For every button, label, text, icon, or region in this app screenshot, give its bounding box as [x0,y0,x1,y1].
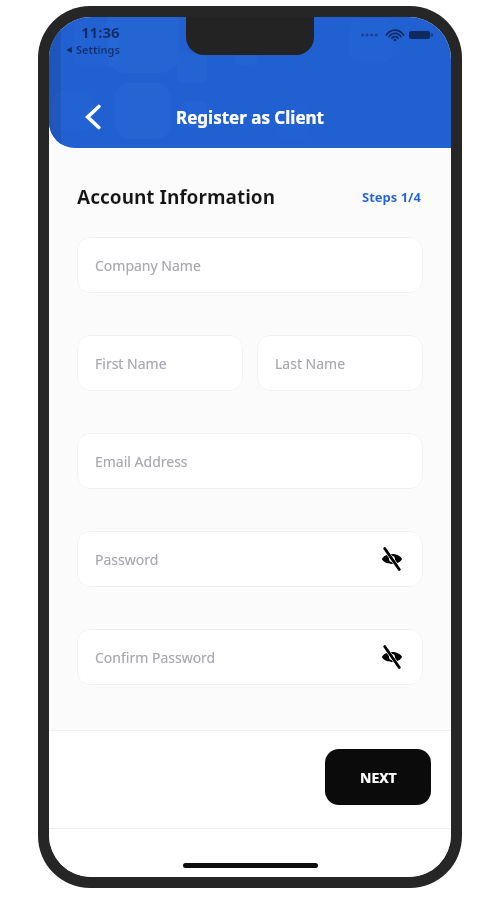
button[interactable]: NEXT [325,749,431,805]
staticText: Company Name [95,256,201,275]
staticText: Settings [76,42,120,57]
staticText: 11:36 [81,22,120,42]
button[interactable]: Company Name [77,237,423,293]
staticText: First Name [95,354,167,373]
staticText: Confirm Password [95,648,216,667]
staticText: Account Information [77,184,276,210]
button[interactable]: Last Name [257,335,423,391]
button[interactable]: Back [73,97,113,137]
staticText: NEXT [360,768,397,787]
button[interactable]: Toggle password visibility [377,544,407,574]
button[interactable]: Toggle password visibility [377,642,407,672]
staticText: Register as Client [176,106,324,129]
button[interactable]: First Name [77,335,243,391]
staticText: Last Name [275,354,346,373]
button[interactable]: Email Address [77,433,423,489]
staticText: Password [95,550,159,569]
staticText: Email Address [95,452,188,471]
button[interactable]: Settings [63,41,122,58]
button[interactable]: Confirm Password [77,629,423,685]
button[interactable]: Steps 1/4 [360,186,423,208]
button[interactable]: Password [77,531,423,587]
